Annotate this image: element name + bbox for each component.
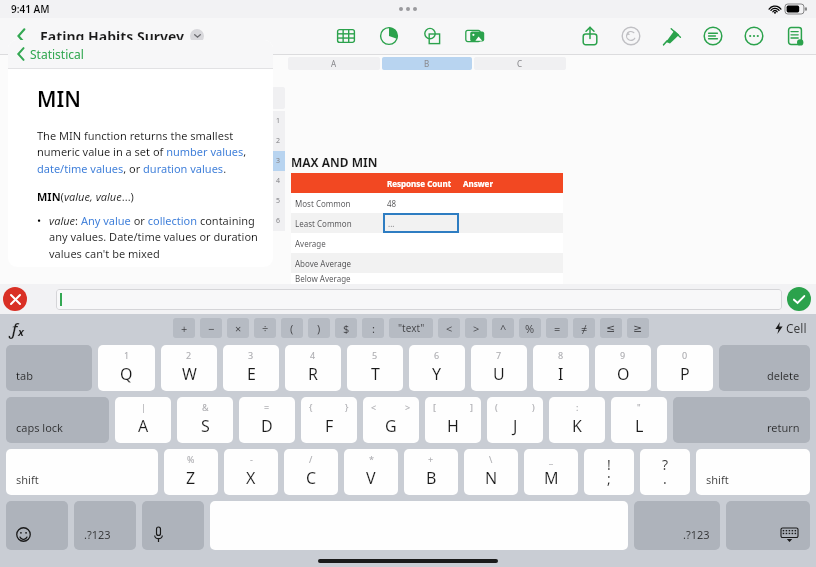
button[interactable]: 2 [161, 345, 217, 391]
button[interactable]: tab [6, 345, 92, 391]
button[interactable]: Functions [10, 317, 24, 340]
button[interactable]: ÷ [254, 318, 276, 338]
button[interactable]: < [438, 318, 460, 338]
button[interactable]: | [115, 397, 171, 443]
button[interactable]: shift [696, 449, 810, 495]
button[interactable]: & [177, 397, 233, 443]
button[interactable]: $ [335, 318, 357, 338]
button[interactable]: 9 [595, 345, 651, 391]
button[interactable]: − [200, 318, 222, 338]
button[interactable]: < [363, 397, 419, 443]
button[interactable]: Dictate [142, 501, 204, 550]
button[interactable] [383, 193, 459, 213]
button[interactable]: 1 [98, 345, 155, 391]
button[interactable]: = [546, 318, 568, 338]
button[interactable]: .?123 [634, 501, 720, 550]
button[interactable]: return [673, 397, 810, 443]
button[interactable]: ) [308, 318, 330, 338]
button[interactable]: Back [8, 23, 34, 49]
button[interactable]: : [549, 397, 605, 443]
button[interactable]: : [362, 318, 384, 338]
button[interactable]: Format [659, 23, 685, 49]
button[interactable]: Insert table [333, 23, 359, 49]
button[interactable]: 4 [285, 345, 341, 391]
staticText: E [247, 363, 256, 385]
button[interactable]: + [404, 449, 458, 495]
button[interactable]: 0 [657, 345, 713, 391]
button[interactable]: * [344, 449, 398, 495]
button[interactable]: 5 [272, 191, 285, 211]
button[interactable]: .?123 [74, 501, 136, 550]
button[interactable]: ( [281, 318, 303, 338]
button[interactable]: % [519, 318, 541, 338]
button[interactable]: More [741, 23, 767, 49]
button[interactable]: Document [782, 23, 808, 49]
button[interactable]: Average [295, 233, 379, 253]
button[interactable] [383, 213, 459, 233]
button[interactable]: ^ [492, 318, 514, 338]
button[interactable]: " [611, 397, 667, 443]
button[interactable]: Insert media [462, 23, 488, 49]
button[interactable]: % [164, 449, 218, 495]
button[interactable]: Cancel [3, 287, 27, 311]
button[interactable]: ! [584, 449, 634, 495]
button[interactable]: Share [577, 23, 603, 49]
button[interactable]: { [301, 397, 357, 443]
button[interactable]: ? [640, 449, 690, 495]
button[interactable]: [ [425, 397, 481, 443]
button[interactable]: Most Common [295, 193, 379, 213]
button[interactable]: Below Average [295, 273, 379, 284]
button[interactable]: 2 [272, 131, 285, 151]
button[interactable]: 7 [471, 345, 527, 391]
button[interactable]: B [382, 57, 472, 70]
button[interactable]: Insert chart [376, 23, 402, 49]
button[interactable]: delete [719, 345, 810, 391]
button[interactable]: - [224, 449, 278, 495]
button[interactable]: Statistical [17, 46, 84, 62]
button[interactable]: caps lock [6, 397, 109, 443]
button[interactable]: Document options [190, 29, 204, 43]
button[interactable]: Above Average [295, 253, 379, 273]
button[interactable]: \ [464, 449, 518, 495]
button[interactable]: ≤ [600, 318, 622, 338]
button[interactable]: Paragraph [700, 23, 726, 49]
button[interactable]: 3 [223, 345, 279, 391]
button[interactable]: Emoji [6, 501, 68, 550]
button[interactable]: C [474, 57, 566, 70]
button[interactable]: Cell [775, 320, 807, 336]
button[interactable]: 8 [533, 345, 589, 391]
button[interactable]: 5 [347, 345, 403, 391]
button[interactable]: 4 [272, 171, 285, 191]
button[interactable]: 3 [272, 151, 285, 171]
button[interactable]: _ [524, 449, 578, 495]
button[interactable]: > [465, 318, 487, 338]
button[interactable]: = [239, 397, 295, 443]
button[interactable]: Undo [618, 23, 644, 49]
button[interactable]: A [288, 57, 380, 70]
button[interactable]: "text" [389, 318, 433, 338]
button[interactable]: ≥ [627, 318, 649, 338]
button[interactable]: Least Common [295, 213, 379, 233]
button[interactable]: / [284, 449, 338, 495]
button[interactable]: 6 [409, 345, 465, 391]
button[interactable]: Hide keyboard [726, 501, 810, 550]
button[interactable]: shift [6, 449, 158, 495]
button[interactable]: ≠ [573, 318, 595, 338]
button[interactable]: 1 [272, 111, 285, 131]
button[interactable]: Accept [787, 287, 811, 311]
button[interactable]: Insert shape [419, 23, 445, 49]
button[interactable]: + [173, 318, 195, 338]
button[interactable]: ( [487, 397, 543, 443]
button[interactable]: × [227, 318, 249, 338]
button[interactable] [56, 289, 782, 310]
button[interactable]: 6 [272, 211, 285, 231]
